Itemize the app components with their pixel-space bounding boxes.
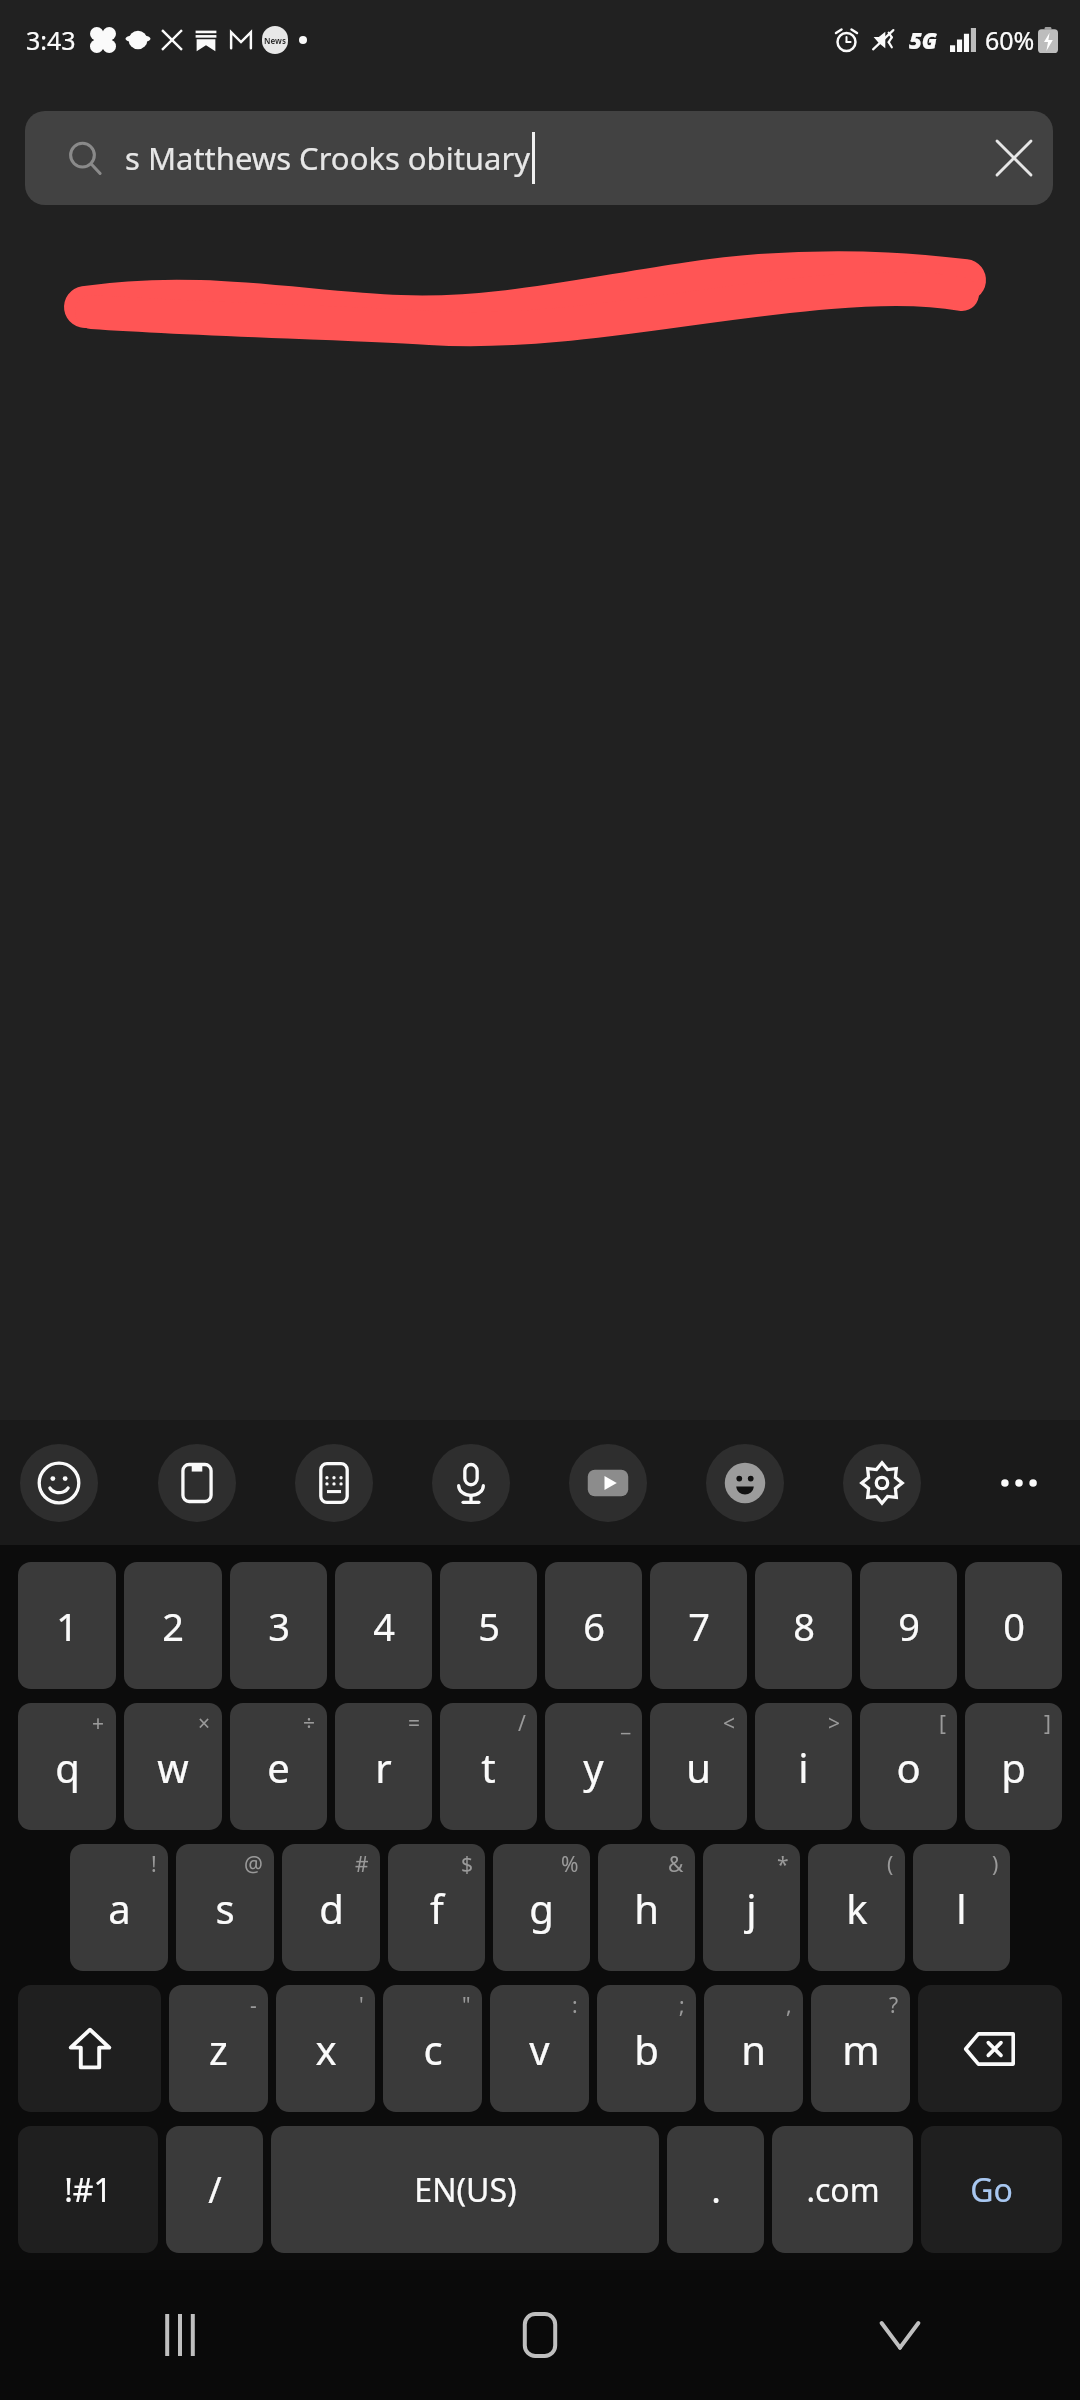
- staticText: j: [746, 1881, 757, 1935]
- button[interactable]: a: [70, 1844, 168, 1971]
- button[interactable]: 0: [965, 1562, 1062, 1689]
- button[interactable]: Clear: [979, 123, 1049, 193]
- button[interactable]: 7: [650, 1562, 747, 1689]
- staticText: k: [846, 1881, 868, 1935]
- staticText: o: [896, 1740, 921, 1794]
- staticText: 2: [162, 1600, 184, 1652]
- button[interactable]: p: [965, 1703, 1062, 1830]
- button[interactable]: 1: [18, 1562, 116, 1689]
- staticText: %: [561, 1850, 579, 1879]
- button[interactable]: Shift: [18, 1985, 161, 2112]
- button[interactable]: EN(US): [271, 2126, 659, 2253]
- staticText: !: [151, 1850, 157, 1879]
- button[interactable]: Settings: [843, 1444, 921, 1522]
- button[interactable]: b: [597, 1985, 696, 2112]
- button[interactable]: Voice input: [432, 1444, 510, 1522]
- staticText: Go: [970, 2168, 1013, 2212]
- button[interactable]: Backspace: [918, 1985, 1062, 2112]
- button[interactable]: Keyboard modes: [295, 1444, 373, 1522]
- button[interactable]: 5: [440, 1562, 537, 1689]
- button[interactable]: k: [808, 1844, 905, 1971]
- button[interactable]: More options: [980, 1444, 1058, 1522]
- staticText: (: [887, 1850, 894, 1879]
- button[interactable]: f: [388, 1844, 485, 1971]
- button[interactable]: Search: [25, 111, 1053, 205]
- button[interactable]: 6: [545, 1562, 642, 1689]
- staticText: ÷: [303, 1709, 316, 1738]
- staticText: 4: [373, 1600, 395, 1652]
- button[interactable]: g: [493, 1844, 590, 1971]
- button[interactable]: n: [704, 1985, 803, 2112]
- staticText: 8: [793, 1600, 815, 1652]
- button[interactable]: .: [667, 2126, 764, 2253]
- staticText: r: [375, 1740, 392, 1794]
- button[interactable]: m: [811, 1985, 910, 2112]
- staticText: 1: [56, 1600, 78, 1652]
- staticText: 60%: [985, 23, 1035, 57]
- button[interactable]: o: [860, 1703, 957, 1830]
- staticText: :: [572, 1991, 578, 2020]
- button[interactable]: Home: [360, 2270, 720, 2400]
- staticText: d: [319, 1881, 344, 1935]
- button[interactable]: .com: [772, 2126, 913, 2253]
- staticText: 3: [268, 1600, 290, 1652]
- button[interactable]: z: [169, 1985, 268, 2112]
- button[interactable]: x: [276, 1985, 375, 2112]
- button[interactable]: i: [755, 1703, 852, 1830]
- staticText: s: [215, 1881, 235, 1935]
- staticText: m: [842, 2022, 880, 2076]
- button[interactable]: y: [545, 1703, 642, 1830]
- button[interactable]: 2: [124, 1562, 222, 1689]
- button[interactable]: q: [18, 1703, 116, 1830]
- staticText: i: [798, 1740, 809, 1794]
- staticText: z: [209, 2022, 228, 2076]
- button[interactable]: l: [913, 1844, 1010, 1971]
- staticText: a: [108, 1881, 131, 1935]
- staticText: g: [529, 1881, 554, 1935]
- staticText: e: [267, 1740, 290, 1794]
- button[interactable]: t: [440, 1703, 537, 1830]
- button[interactable]: j: [703, 1844, 800, 1971]
- staticText: t: [481, 1740, 496, 1794]
- staticText: ": [462, 1991, 471, 2020]
- staticText: ): [992, 1850, 999, 1879]
- button[interactable]: c: [383, 1985, 482, 2112]
- button[interactable]: 8: [755, 1562, 852, 1689]
- button[interactable]: h: [598, 1844, 695, 1971]
- staticText: x: [315, 2022, 337, 2076]
- staticText: $: [461, 1850, 474, 1879]
- staticText: +: [92, 1709, 105, 1738]
- button[interactable]: r: [335, 1703, 432, 1830]
- button[interactable]: 3: [230, 1562, 327, 1689]
- staticText: ?: [889, 1991, 899, 2020]
- button[interactable]: Emoji: [20, 1444, 98, 1522]
- button[interactable]: Stickers: [706, 1444, 784, 1522]
- staticText: s Matthews Crooks obituary: [125, 137, 531, 179]
- staticText: w: [157, 1740, 189, 1794]
- button[interactable]: v: [490, 1985, 589, 2112]
- staticText: EN(US): [414, 2168, 517, 2212]
- button[interactable]: Clipboard: [158, 1444, 236, 1522]
- staticText: =: [408, 1709, 421, 1738]
- button[interactable]: 4: [335, 1562, 432, 1689]
- staticText: h: [634, 1881, 659, 1935]
- staticText: -: [250, 1991, 257, 2020]
- staticText: /: [518, 1709, 526, 1738]
- button[interactable]: s: [176, 1844, 274, 1971]
- button[interactable]: w: [124, 1703, 222, 1830]
- button[interactable]: d: [282, 1844, 380, 1971]
- staticText: c: [423, 2022, 443, 2076]
- button[interactable]: Recents: [0, 2270, 360, 2400]
- staticText: 0: [1003, 1600, 1025, 1652]
- staticText: &: [668, 1850, 684, 1879]
- button[interactable]: YouTube: [569, 1444, 647, 1522]
- button[interactable]: Go: [921, 2126, 1062, 2253]
- button[interactable]: u: [650, 1703, 747, 1830]
- button[interactable]: e: [230, 1703, 327, 1830]
- button[interactable]: 9: [860, 1562, 957, 1689]
- button[interactable]: Hide keyboard: [720, 2270, 1080, 2400]
- button[interactable]: !#1: [18, 2126, 158, 2253]
- button[interactable]: /: [166, 2126, 263, 2253]
- staticText: n: [741, 2022, 766, 2076]
- staticText: 5: [478, 1600, 500, 1652]
